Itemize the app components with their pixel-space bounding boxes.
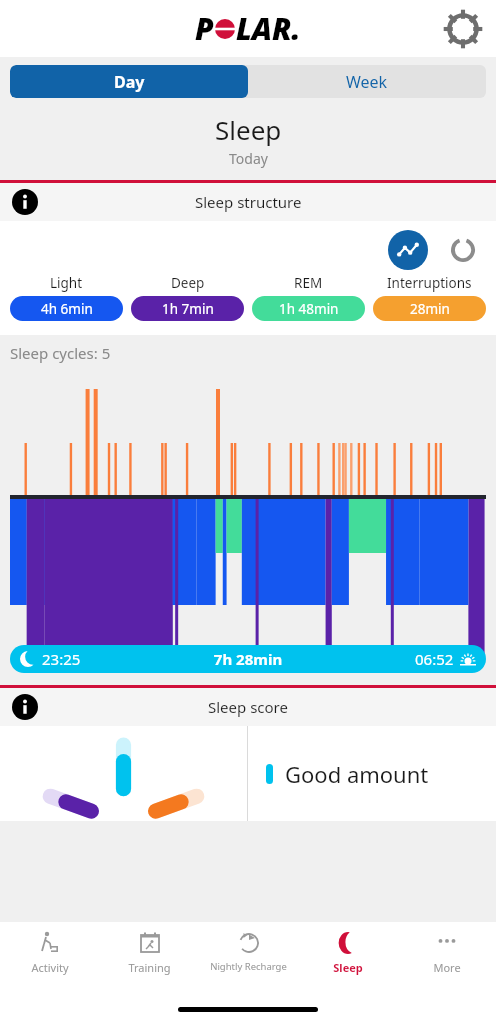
button[interactable]: Day [10,65,248,98]
staticText: Nightly Recharge [210,960,287,973]
button[interactable]: Deep [131,274,244,321]
button[interactable]: 23:25 [10,645,486,673]
staticText: Sleep [215,112,282,147]
staticText: Deep [171,274,205,292]
button[interactable]: REM [252,274,365,321]
staticText: LAR. [236,8,301,49]
button[interactable]: Interruptions [373,274,486,321]
staticText: 06:52 [415,649,454,669]
button[interactable]: Sleep structure [0,183,496,221]
button[interactable]: Sleep [298,922,397,994]
button[interactable]: Line chart view [388,230,428,270]
button[interactable]: Settings [446,12,480,46]
staticText: Day [114,71,145,93]
staticText: Good amount [285,759,429,789]
button[interactable]: Light [10,274,123,321]
staticText: 23:25 [42,649,81,669]
staticText: Sleep structure [195,192,302,212]
staticText: Light [50,274,83,292]
staticText: 28min [410,300,450,318]
staticText: 7h 28min [81,649,415,669]
staticText: REM [294,274,323,292]
button[interactable]: Nightly Recharge [199,922,298,994]
staticText: Today [229,149,268,168]
staticText: Sleep [333,960,363,975]
button[interactable]: Week [248,65,486,98]
button[interactable]: Sleep score [0,688,496,726]
staticText: Week [346,71,388,93]
button[interactable]: Training [100,922,199,994]
staticText: P [195,8,214,49]
button[interactable]: Activity [0,922,100,994]
staticText: 4h 6min [41,300,93,318]
staticText: 1h 48min [279,300,339,318]
staticText: Training [128,960,171,975]
button[interactable]: Good amount [266,726,496,821]
staticText: 1h 7min [162,300,214,318]
staticText: More [433,960,461,975]
staticText: Activity [31,960,69,975]
staticText: Interruptions [387,274,472,292]
staticText: Sleep score [208,697,288,717]
button[interactable]: Donut chart view [446,233,480,267]
button[interactable] [0,726,247,821]
button[interactable]: More [397,922,496,994]
staticText: Sleep cycles: 5 [10,343,111,363]
